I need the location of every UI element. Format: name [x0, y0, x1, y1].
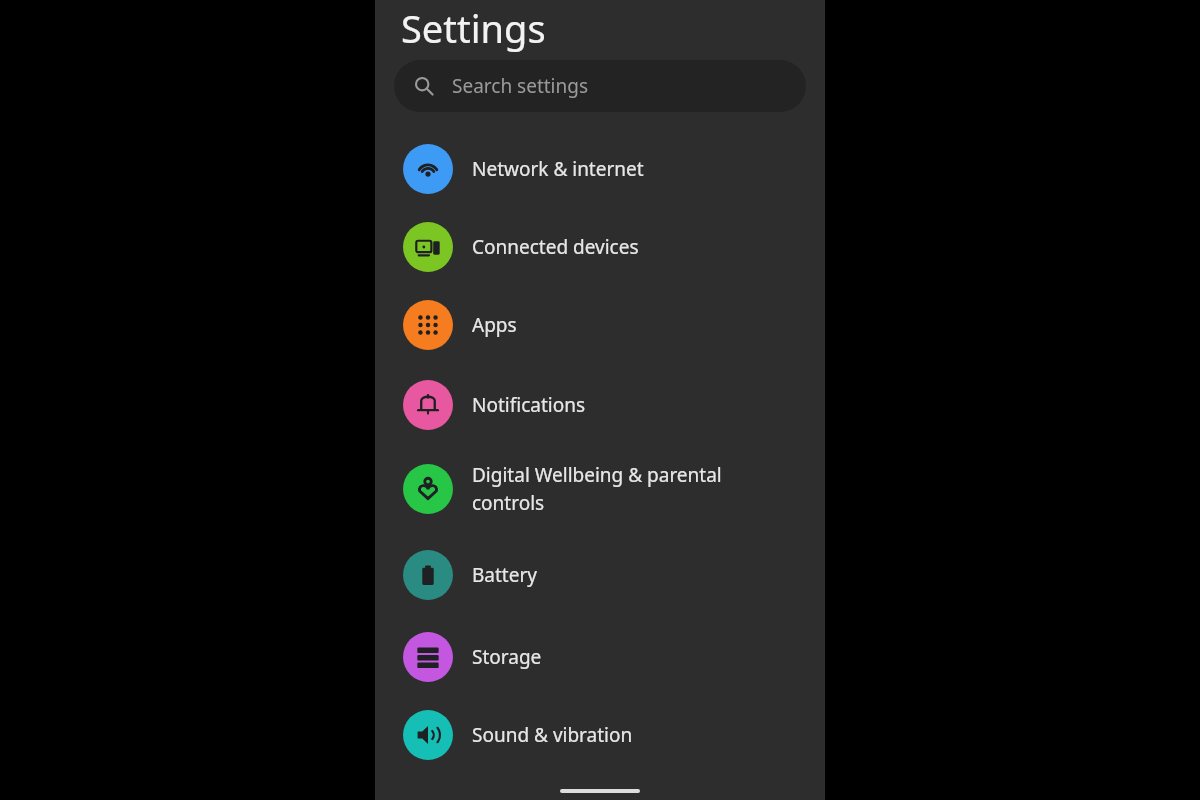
- staticText: Network & internet: [472, 156, 644, 182]
- button[interactable]: Network & internet: [375, 130, 825, 208]
- staticText: Search settings: [452, 73, 589, 99]
- staticText: Connected devices: [472, 234, 639, 260]
- button[interactable]: Apps: [375, 286, 825, 364]
- staticText: Notifications: [472, 392, 586, 418]
- other: Search: [414, 76, 434, 96]
- staticText: Sound & vibration: [472, 722, 633, 748]
- button[interactable]: Connected devices: [375, 208, 825, 286]
- staticText: Storage: [472, 644, 542, 670]
- staticText: Battery: [472, 562, 537, 588]
- button[interactable]: Storage: [375, 618, 825, 696]
- button[interactable]: Sound & vibration: [375, 696, 825, 774]
- staticText: Settings: [401, 2, 546, 54]
- staticText: Apps: [472, 312, 517, 338]
- button[interactable]: Battery: [375, 532, 825, 618]
- staticText: Digital Wellbeing & parental controls: [472, 462, 722, 516]
- button[interactable]: Search: [394, 60, 806, 112]
- button[interactable]: Digital Wellbeing & parental controls: [375, 446, 825, 532]
- button[interactable]: Notifications: [375, 364, 825, 446]
